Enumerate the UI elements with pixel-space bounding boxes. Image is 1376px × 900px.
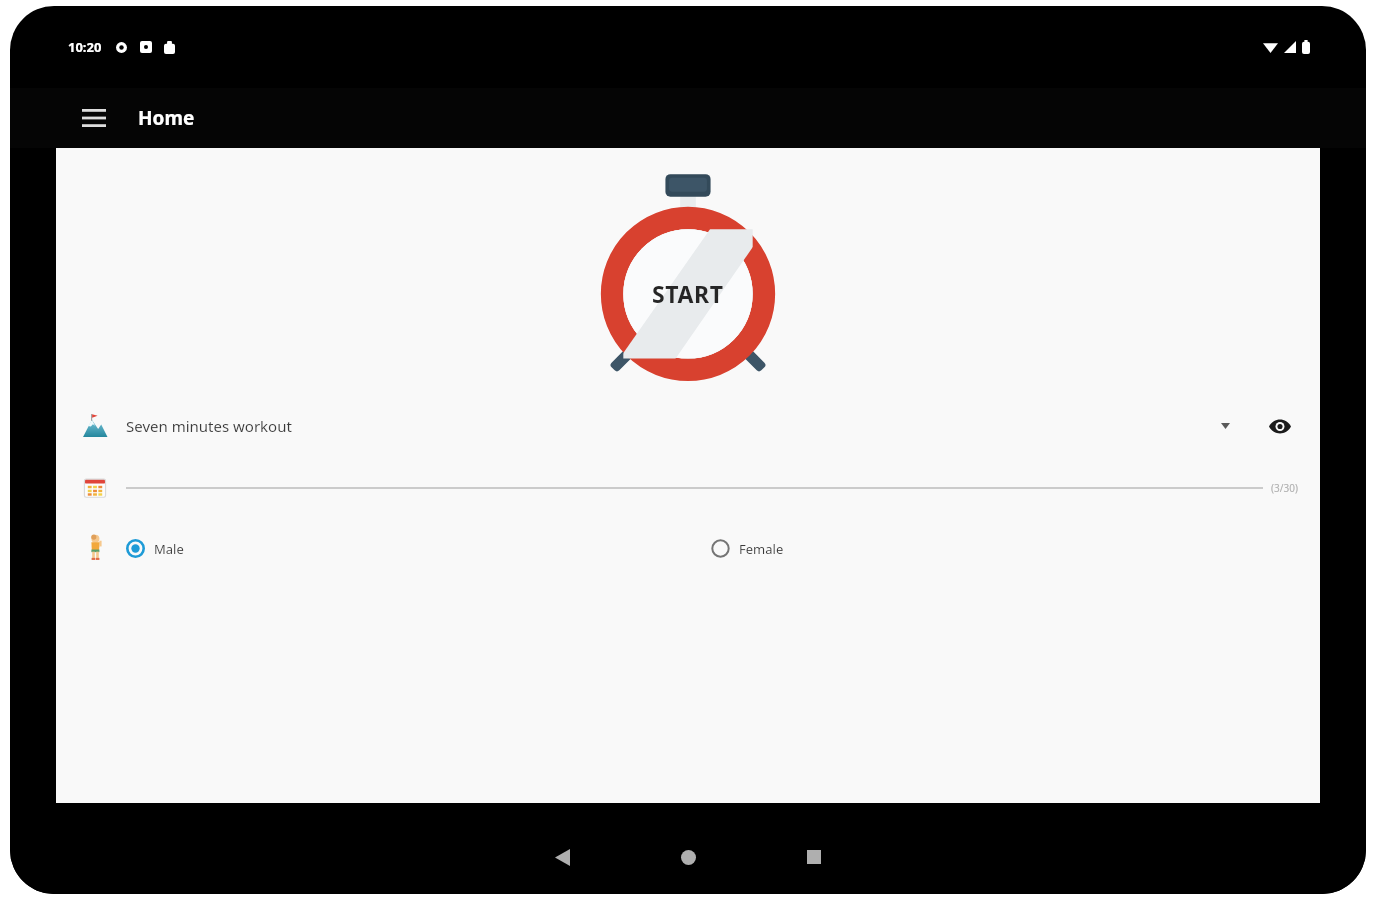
staticText: Home [138,105,195,131]
button[interactable]: Home [661,830,715,884]
staticText: Male [154,540,184,558]
staticText: Female [739,540,784,558]
staticText: 10:20 [68,38,102,56]
button[interactable]: Recent apps [787,830,841,884]
button[interactable]: Male [126,539,190,558]
staticText: Seven minutes workout [126,416,292,436]
button[interactable]: Preview workout [1262,408,1298,444]
button[interactable]: Open navigation menu [72,96,116,140]
button[interactable]: Female [711,539,790,558]
button[interactable]: Back [535,830,589,884]
staticText: (3/30) [1271,481,1298,495]
button[interactable]: Seven minutes workout [56,403,1320,449]
staticText: START [652,278,724,309]
button[interactable]: (3/30) [56,467,1320,509]
button[interactable]: Start workout timer [583,166,793,381]
